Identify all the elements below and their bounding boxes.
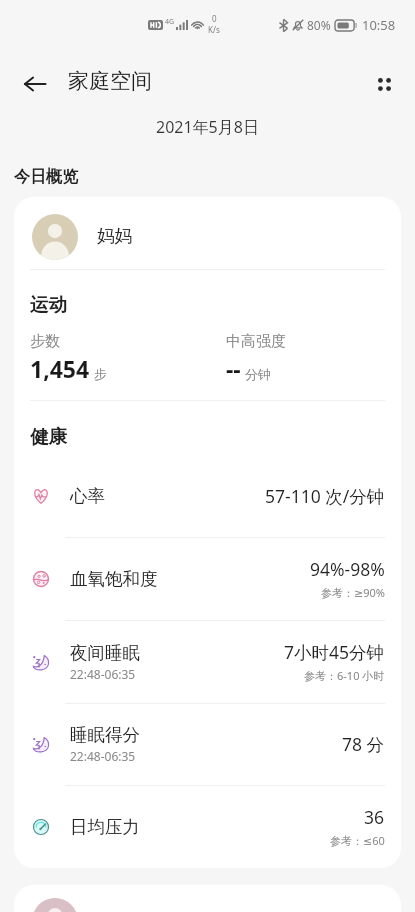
- staticText: 家庭空间: [68, 68, 152, 94]
- staticText: K/s: [208, 24, 220, 35]
- staticText: 步数: [30, 332, 60, 351]
- button[interactable]: 心率: [14, 454, 401, 537]
- staticText: 78 分: [342, 732, 385, 756]
- staticText: 今日概览: [14, 167, 78, 187]
- staticText: 10:58: [362, 16, 396, 34]
- staticText: 22:48-06:35: [70, 748, 136, 764]
- staticText: 7小时45分钟: [284, 640, 385, 664]
- staticText: 中高强度: [226, 332, 286, 351]
- button[interactable]: 返回: [12, 61, 58, 107]
- staticText: 参考：≤60: [330, 833, 385, 848]
- staticText: 参考：6-10 小时: [304, 668, 385, 683]
- button[interactable]: 夜间睡眠: [14, 620, 401, 703]
- staticText: 1,454: [30, 353, 90, 384]
- staticText: 妈妈: [97, 225, 132, 247]
- staticText: 睡眠得分: [70, 724, 140, 746]
- button[interactable]: 睡眠得分: [14, 703, 401, 785]
- staticText: 日均压力: [70, 816, 140, 838]
- button[interactable]: 更多: [361, 61, 407, 107]
- staticText: 4G: [165, 17, 175, 27]
- staticText: 36: [364, 805, 385, 829]
- staticText: 22:48-06:35: [70, 666, 136, 682]
- staticText: 94%-98%: [310, 557, 385, 581]
- staticText: 2021年5月8日: [156, 116, 259, 138]
- staticText: 80%: [307, 17, 331, 33]
- staticText: 参考：≥90%: [321, 585, 385, 600]
- staticText: 运动: [30, 293, 67, 316]
- button[interactable]: 日均压力: [14, 785, 401, 868]
- staticText: 健康: [30, 425, 67, 448]
- staticText: 分钟: [245, 366, 271, 382]
- staticText: 0: [212, 13, 217, 24]
- button[interactable]: 血氧饱和度: [14, 537, 401, 620]
- button[interactable]: 爸爸: [14, 885, 401, 912]
- staticText: 血氧饱和度: [70, 568, 158, 590]
- staticText: 步: [94, 366, 107, 382]
- staticText: 夜间睡眠: [70, 642, 140, 664]
- staticText: 57-110 次/分钟: [265, 484, 385, 508]
- button[interactable]: 妈妈: [14, 201, 401, 273]
- staticText: --: [226, 353, 241, 384]
- staticText: 心率: [70, 485, 105, 507]
